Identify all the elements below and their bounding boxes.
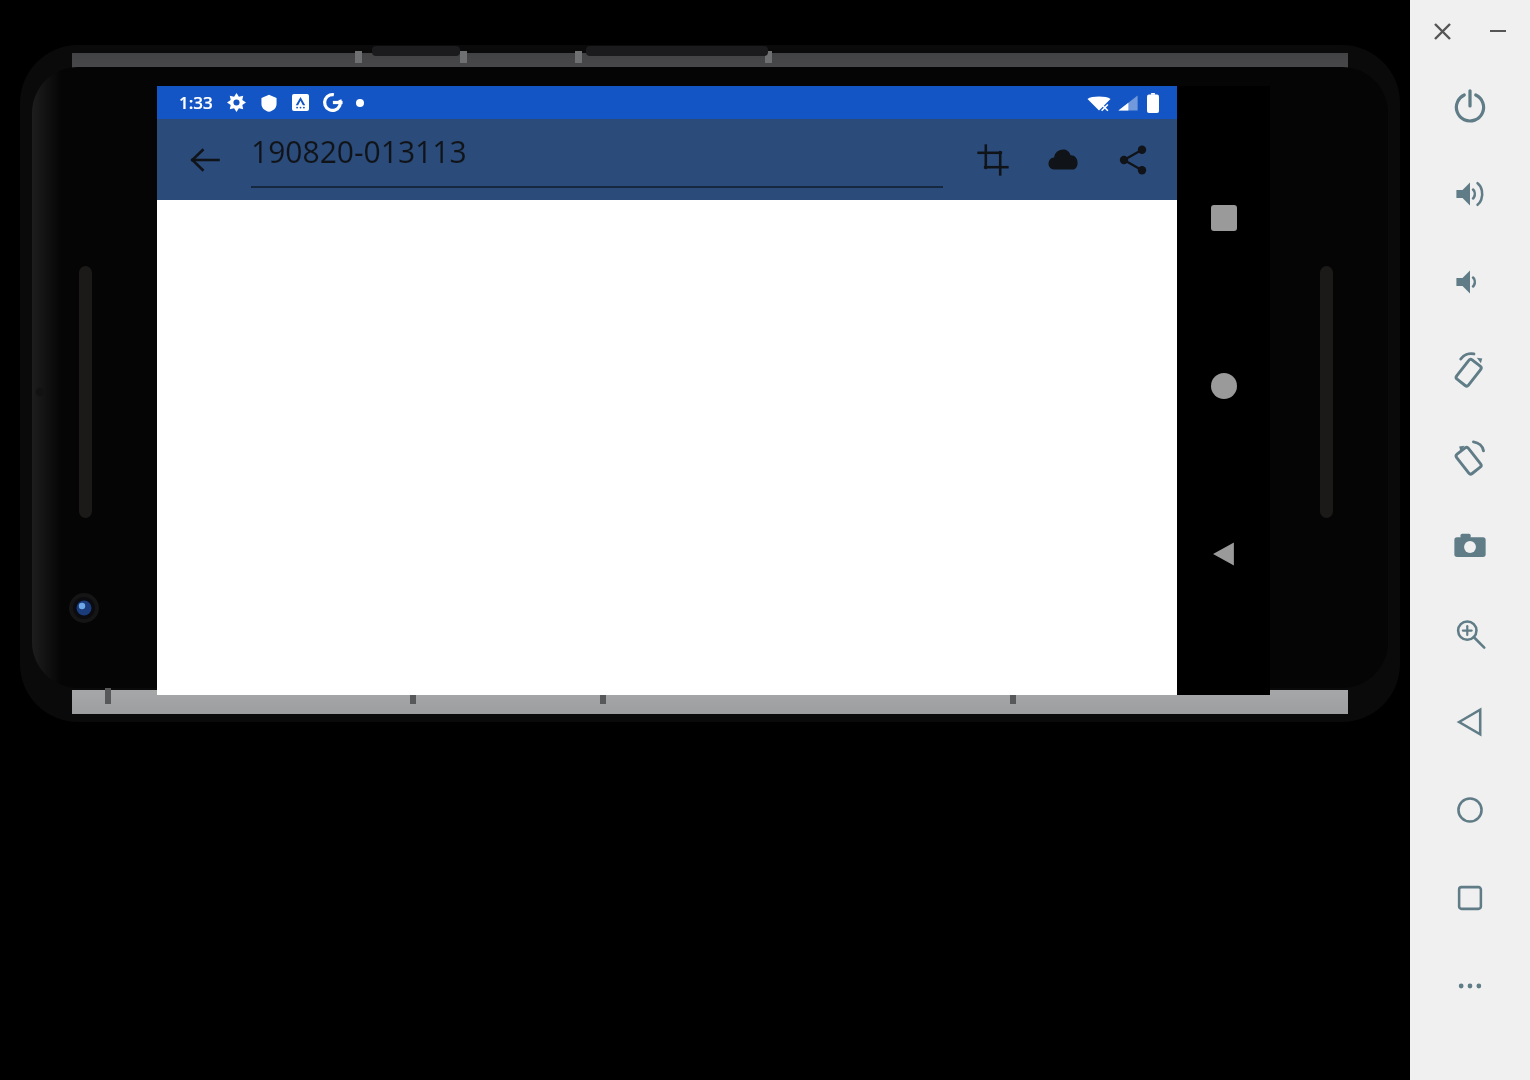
button[interactable]: Back xyxy=(1196,526,1252,582)
button[interactable]: Share xyxy=(1105,132,1161,188)
button[interactable]: Back xyxy=(1410,678,1530,766)
button[interactable]: Overview xyxy=(1410,854,1530,942)
button[interactable]: More xyxy=(1410,942,1530,1030)
button[interactable]: Minimize xyxy=(1481,14,1515,48)
button[interactable]: Volume up xyxy=(1410,150,1530,238)
button[interactable]: Upload to cloud xyxy=(1035,132,1091,188)
button[interactable]: Home xyxy=(1410,766,1530,854)
button[interactable]: Take screenshot xyxy=(1410,502,1530,590)
button[interactable]: Close xyxy=(1425,14,1459,48)
staticText: 190820-013113 xyxy=(251,131,467,172)
staticText: 1:33 xyxy=(179,91,213,114)
button[interactable]: Power xyxy=(1410,62,1530,150)
button[interactable]: Rotate right xyxy=(1410,414,1530,502)
button[interactable]: Rotate left xyxy=(1410,326,1530,414)
button[interactable]: 190820-013113 xyxy=(251,131,943,188)
button[interactable]: Overview xyxy=(1196,190,1252,246)
button[interactable]: Volume down xyxy=(1410,238,1530,326)
button[interactable]: Zoom xyxy=(1410,590,1530,678)
button[interactable]: Home xyxy=(1196,358,1252,414)
button[interactable]: Back xyxy=(177,132,233,188)
button[interactable]: Crop xyxy=(965,132,1021,188)
